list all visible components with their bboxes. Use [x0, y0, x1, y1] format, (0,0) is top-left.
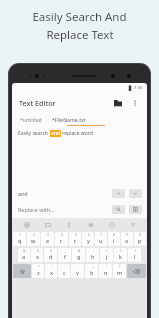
- button[interactable]: Replace all: [129, 205, 142, 214]
- staticText: (: [120, 249, 121, 253]
- staticText: Text Editor: [19, 98, 56, 108]
- staticText: h: [91, 253, 95, 261]
- staticText: -: [93, 249, 94, 253]
- staticText: +: [106, 249, 108, 253]
- staticText: *: [38, 265, 40, 269]
- staticText: s: [36, 253, 39, 261]
- staticText: g: [77, 253, 81, 261]
- button[interactable]: $: [44, 248, 57, 262]
- button[interactable]: 0: [134, 232, 146, 246]
- button[interactable]: @: [18, 248, 30, 262]
- staticText: Replace Text: [46, 27, 114, 43]
- button[interactable]: ): [128, 248, 141, 262]
- button[interactable]: 7: [95, 232, 107, 246]
- staticText: #: [37, 249, 39, 253]
- button[interactable]: (: [114, 248, 127, 262]
- staticText: 3: [47, 233, 49, 237]
- button[interactable]: Emoji: [20, 218, 33, 231]
- button[interactable]: 8: [108, 232, 120, 246]
- button[interactable]: :: [71, 264, 84, 278]
- button[interactable]: *: [32, 264, 44, 278]
- button[interactable]: ?: [113, 264, 126, 278]
- staticText: o: [125, 237, 129, 245]
- staticText: c: [63, 269, 66, 277]
- staticText: i: [113, 237, 115, 245]
- button[interactable]: +: [100, 248, 113, 262]
- staticText: Replace with...: [18, 206, 55, 213]
- button[interactable]: 6: [82, 232, 94, 246]
- staticText: t: [74, 237, 77, 245]
- staticText: 9: [126, 233, 128, 237]
- staticText: n: [104, 269, 108, 277]
- button[interactable]: *untitled: [19, 116, 43, 123]
- staticText: 2: [33, 233, 35, 237]
- button[interactable]: 9: [121, 232, 133, 246]
- staticText: d: [49, 253, 53, 261]
- button[interactable]: Voice input: [62, 218, 75, 231]
- staticText: ': [64, 265, 65, 269]
- staticText: ;: [92, 265, 93, 269]
- button[interactable]: Clipboard: [84, 218, 97, 231]
- staticText: l: [134, 253, 136, 261]
- staticText: &: [78, 249, 81, 253]
- staticText: *FileName.txt: [52, 116, 86, 123]
- staticText: $: [50, 249, 52, 253]
- staticText: 6: [88, 233, 90, 237]
- button[interactable]: 1: [13, 232, 26, 246]
- staticText: v: [76, 269, 79, 277]
- button[interactable]: 5: [69, 232, 81, 246]
- staticText: Easily Search And: [32, 9, 127, 25]
- button[interactable]: _: [58, 248, 71, 262]
- staticText: @: [23, 249, 26, 253]
- button[interactable]: Stickers: [105, 218, 118, 231]
- staticText: :: [77, 265, 78, 269]
- button[interactable]: Replace: [112, 205, 125, 214]
- staticText: and: [18, 190, 28, 197]
- staticText: 8: [113, 233, 115, 237]
- button[interactable]: 2: [27, 232, 40, 246]
- button[interactable]: ': [58, 264, 70, 278]
- button[interactable]: Replace with...: [18, 206, 112, 213]
- staticText: 7: [100, 233, 102, 237]
- staticText: 0: [139, 233, 141, 237]
- button[interactable]: *FileName.txt: [51, 116, 87, 123]
- button[interactable]: -: [86, 248, 99, 262]
- button[interactable]: Find next: [129, 189, 142, 198]
- button[interactable]: ": [45, 264, 57, 278]
- staticText: k: [119, 253, 122, 261]
- button[interactable]: 4: [55, 232, 68, 246]
- staticText: j: [106, 253, 108, 261]
- staticText: p: [138, 237, 142, 245]
- button[interactable]: More options: [128, 96, 141, 109]
- button[interactable]: Backspace: [127, 264, 146, 278]
- staticText: 7:30: [134, 85, 143, 91]
- staticText: and: [51, 130, 60, 137]
- button[interactable]: Open folder: [111, 96, 125, 110]
- staticText: ?: [119, 265, 121, 269]
- staticText: y: [87, 237, 90, 245]
- button[interactable]: !: [99, 264, 112, 278]
- staticText: f: [64, 253, 66, 261]
- button[interactable]: &: [72, 248, 85, 262]
- staticText: z: [37, 269, 40, 277]
- staticText: 4: [61, 233, 63, 237]
- staticText: _: [64, 249, 66, 253]
- staticText: x: [50, 269, 53, 277]
- button[interactable]: Shift: [13, 264, 31, 278]
- button[interactable]: GIF: [41, 218, 54, 231]
- staticText: *untitled: [20, 116, 42, 123]
- button[interactable]: and: [18, 190, 112, 197]
- staticText: ": [51, 265, 53, 269]
- button[interactable]: Find previous: [112, 189, 125, 198]
- button[interactable]: #: [31, 248, 43, 262]
- staticText: ): [135, 249, 136, 253]
- staticText: w: [31, 237, 36, 245]
- button[interactable]: Settings: [126, 218, 139, 231]
- staticText: a: [22, 253, 26, 261]
- staticText: r: [60, 237, 63, 245]
- staticText: Easily search: [18, 130, 50, 137]
- button[interactable]: ;: [85, 264, 98, 278]
- staticText: !: [106, 265, 107, 269]
- staticText: e: [46, 237, 50, 245]
- button[interactable]: 3: [41, 232, 54, 246]
